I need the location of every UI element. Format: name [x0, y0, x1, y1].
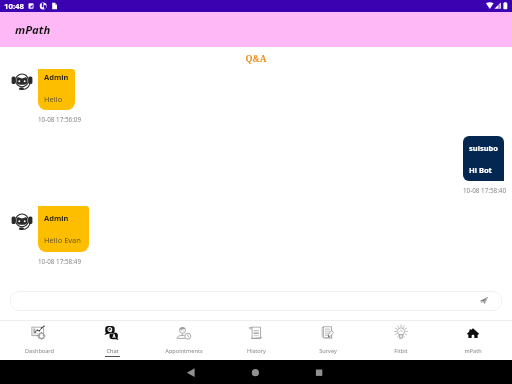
staticText: History — [247, 347, 266, 355]
staticText: mPath — [464, 347, 482, 355]
button[interactable]: Chat — [79, 321, 145, 360]
staticText: Admin — [44, 72, 69, 82]
staticText: mPath — [15, 22, 51, 37]
staticText: 10-08 17:56:09 — [38, 115, 82, 124]
staticText: Admin — [44, 213, 69, 223]
staticText: Hello Evan — [44, 235, 81, 245]
button[interactable]: Appointments — [151, 321, 217, 360]
staticText: Dashboard — [25, 347, 54, 355]
button[interactable]: Send — [479, 296, 489, 306]
staticText: Fitbit — [394, 347, 408, 355]
button[interactable]: Survey — [295, 321, 361, 360]
other: System navigation — [0, 360, 512, 384]
staticText: Hi Bot — [469, 165, 492, 175]
staticText: Hello — [44, 94, 63, 104]
button[interactable]: History — [223, 321, 289, 360]
staticText: 10-08 17:58:49 — [38, 257, 82, 266]
staticText: suisubo — [469, 143, 498, 153]
button[interactable]: Dashboard — [6, 321, 72, 360]
staticText: Q&A — [0, 52, 512, 64]
staticText: Chat — [106, 347, 119, 355]
staticText: 10:48 — [4, 1, 25, 12]
staticText: 10-08 17:58:40 — [463, 186, 507, 195]
staticText: Survey — [319, 347, 337, 355]
button[interactable]: mPath — [440, 321, 506, 360]
button[interactable]: Fitbit — [368, 321, 434, 360]
button[interactable]: Send — [10, 291, 502, 311]
staticText: Appointments — [165, 347, 203, 355]
button[interactable]: suisubo — [463, 136, 504, 181]
button[interactable]: Admin — [38, 206, 89, 252]
button[interactable]: Admin — [38, 69, 75, 110]
